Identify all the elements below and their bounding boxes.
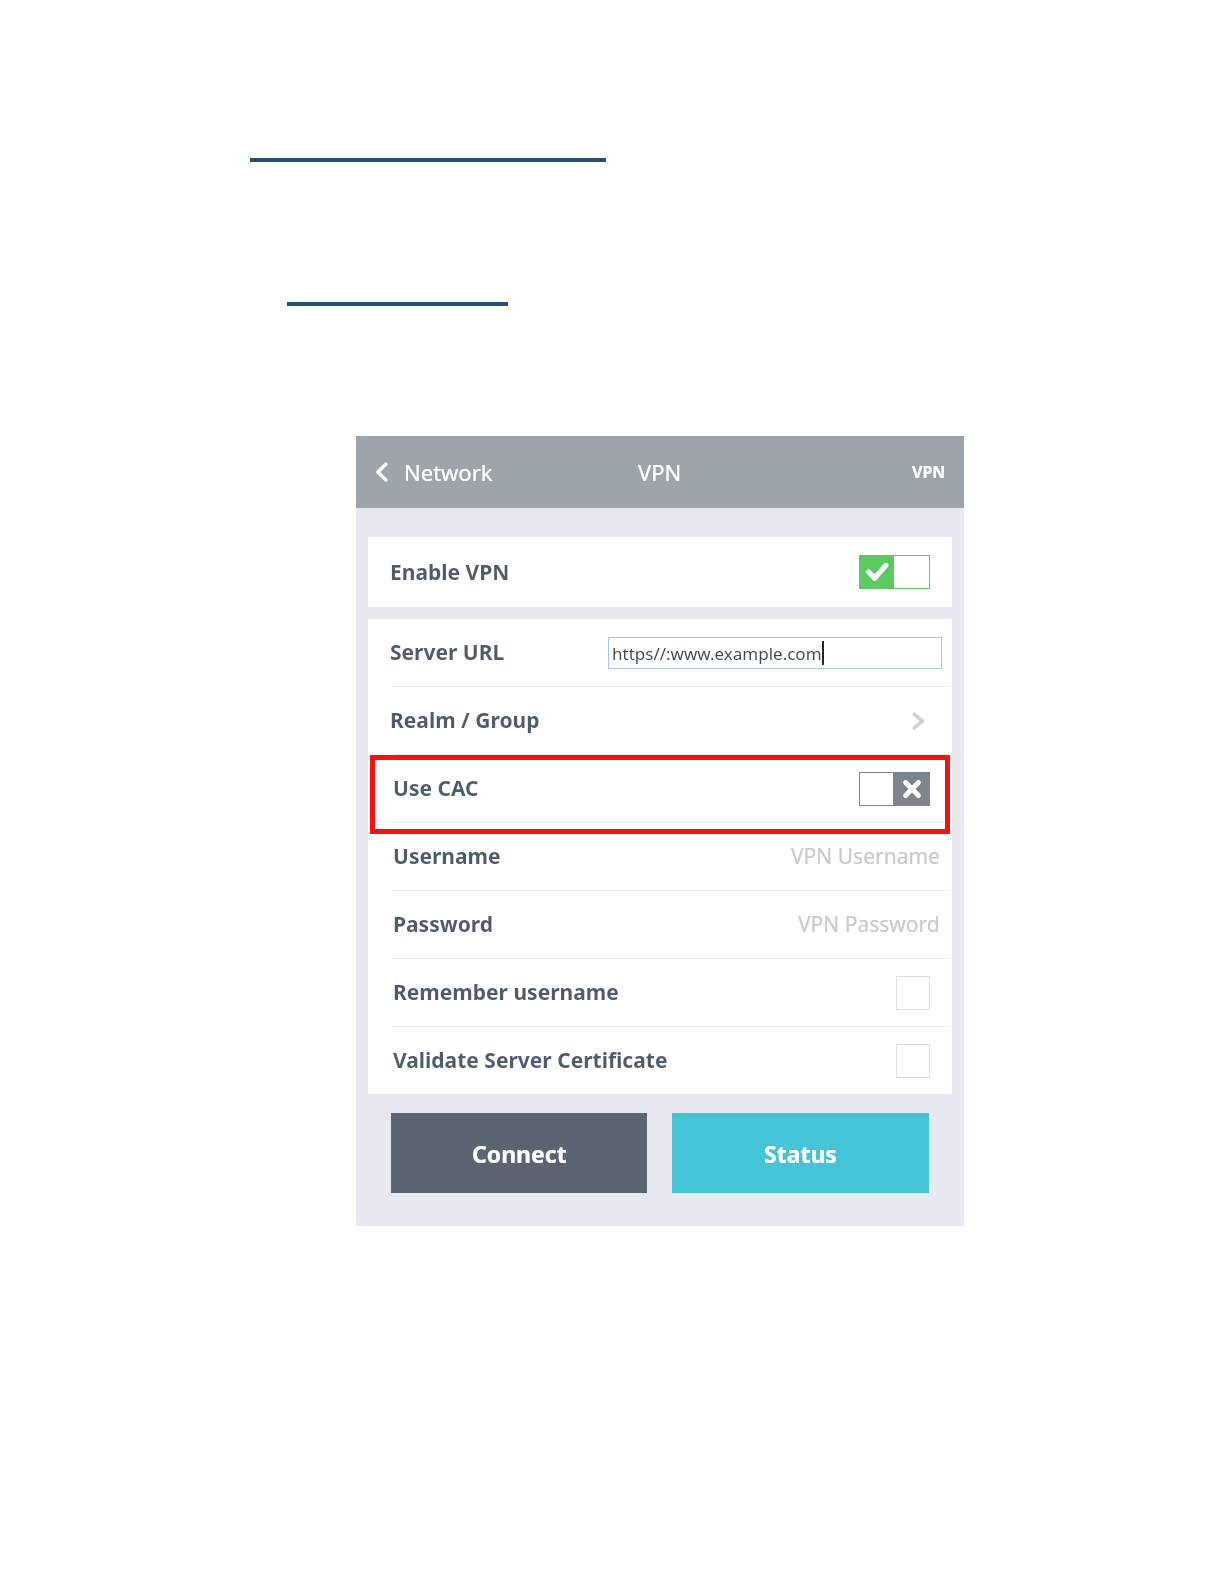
button[interactable]: Enable VPN: [368, 537, 952, 607]
button[interactable]: Status: [672, 1113, 929, 1193]
staticText: VPN: [638, 457, 682, 487]
staticText: Password: [393, 910, 494, 939]
button[interactable]: Server URL: [368, 619, 952, 686]
other: Validate Server Certificate checkbox: [896, 1044, 930, 1078]
staticText: Connect: [472, 1138, 567, 1169]
other: Remember username checkbox: [896, 976, 930, 1010]
staticText: Validate Server Certificate: [393, 1046, 668, 1075]
staticText: Realm / Group: [390, 706, 540, 735]
button[interactable]: Use CAC: [368, 755, 952, 822]
staticText: VPN Username: [791, 842, 940, 871]
button[interactable]: Validate Server Certificate: [368, 1027, 952, 1094]
button[interactable]: Connect: [391, 1113, 647, 1193]
button[interactable]: Back to Network: [364, 449, 501, 495]
staticText: Username: [393, 842, 501, 871]
button[interactable]: Enable VPN toggle, on: [859, 555, 930, 589]
staticText: Enable VPN: [390, 558, 510, 587]
button[interactable]: Password: [368, 891, 952, 958]
other: Back to Network: [372, 462, 392, 482]
other: Open Realm / Group: [906, 709, 930, 733]
staticText: VPN Password: [798, 910, 940, 939]
button[interactable]: Use CAC toggle, off: [859, 772, 930, 806]
button[interactable]: Remember username: [368, 959, 952, 1026]
staticText: https//:www.example.com: [612, 642, 822, 665]
staticText: Remember username: [393, 978, 619, 1007]
staticText: Server URL: [390, 638, 505, 667]
button[interactable]: Username: [368, 823, 952, 890]
staticText: VPN: [912, 461, 946, 483]
staticText: Status: [764, 1138, 837, 1169]
button[interactable]: Realm / Group: [368, 687, 952, 754]
staticText: Network: [404, 457, 493, 487]
staticText: Use CAC: [393, 774, 479, 803]
